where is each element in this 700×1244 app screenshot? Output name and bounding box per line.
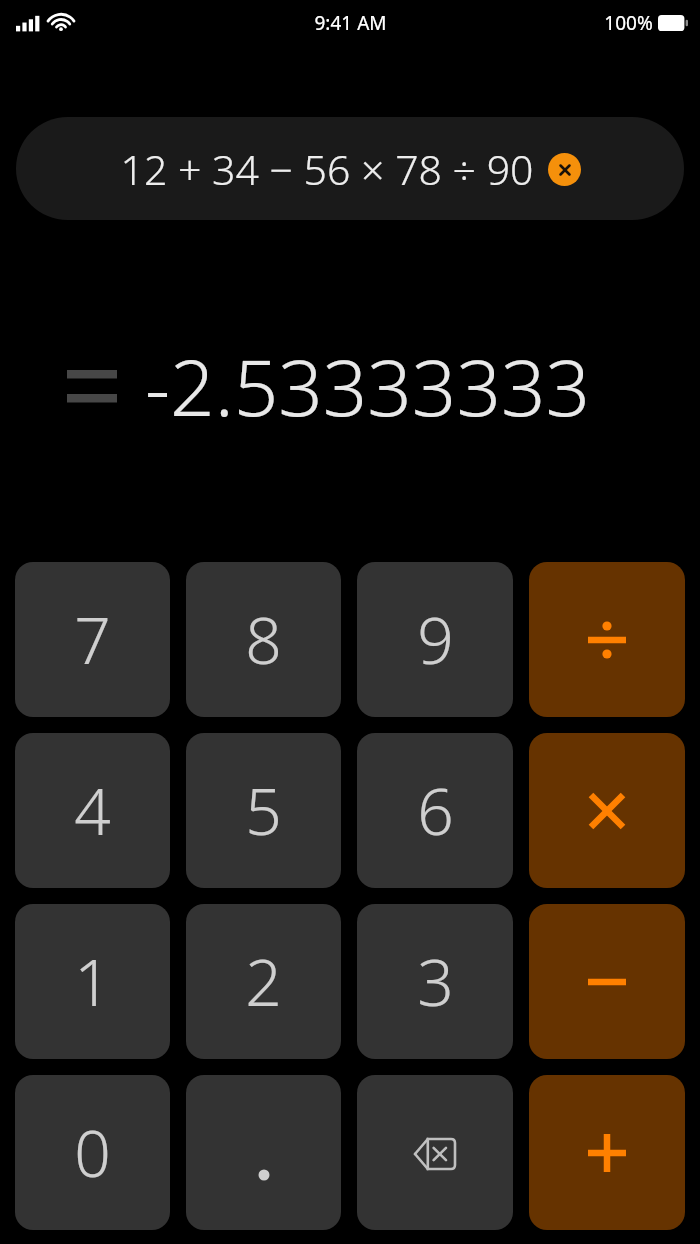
staticText: 2 — [245, 938, 282, 1025]
button[interactable]: 8 — [186, 562, 341, 717]
button[interactable]: Clear expression — [548, 153, 581, 186]
staticText: 12 + 34 − 56 × 78 ÷ 90 — [120, 141, 534, 197]
button[interactable]: 9 — [357, 562, 513, 717]
staticText: 9 — [417, 596, 454, 683]
button[interactable]: 7 — [15, 562, 170, 717]
staticText: 100% — [604, 10, 653, 36]
staticText: 9:41 AM — [314, 10, 387, 36]
staticText: 4 — [74, 767, 111, 854]
button[interactable]: Multiply — [529, 733, 685, 888]
button[interactable]: 1 — [15, 904, 170, 1059]
button[interactable]: Subtract — [529, 904, 685, 1059]
button[interactable]: 4 — [15, 733, 170, 888]
button[interactable]: 0 — [15, 1075, 170, 1230]
staticText: 8 — [245, 596, 282, 683]
staticText: 1 — [74, 938, 111, 1025]
staticText: -2.53333333 — [145, 333, 590, 439]
button[interactable]: 3 — [357, 904, 513, 1059]
button[interactable]: 5 — [186, 733, 341, 888]
staticText: 7 — [74, 596, 111, 683]
staticText: 5 — [245, 767, 282, 854]
button[interactable]: 6 — [357, 733, 513, 888]
button[interactable] — [186, 1075, 341, 1230]
staticText: 0 — [74, 1109, 111, 1196]
button[interactable]: 12 + 34 − 56 × 78 ÷ 90 — [16, 117, 684, 220]
button[interactable]: Divide — [529, 562, 685, 717]
button[interactable]: Add — [529, 1075, 685, 1230]
button[interactable]: 2 — [186, 904, 341, 1059]
staticText: 3 — [417, 938, 454, 1025]
button[interactable]: Backspace — [357, 1075, 513, 1230]
staticText: 6 — [417, 767, 454, 854]
